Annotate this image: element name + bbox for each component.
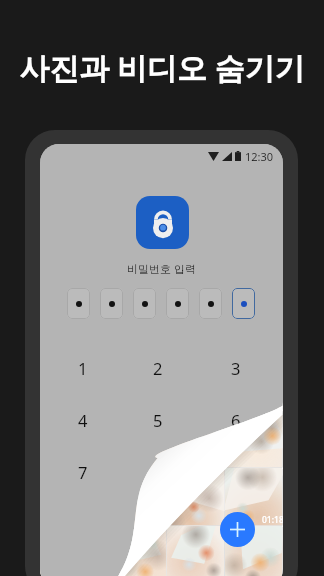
button[interactable]: 6: [197, 394, 275, 446]
button[interactable]: [133, 288, 156, 319]
staticText: 3: [231, 357, 241, 379]
button[interactable]: [166, 288, 189, 319]
staticText: 1: [78, 357, 88, 379]
button[interactable]: 3: [197, 342, 275, 394]
button[interactable]: [67, 288, 90, 319]
button[interactable]: 2: [119, 342, 197, 394]
button[interactable]: 4: [43, 394, 122, 446]
staticText: 8: [153, 461, 163, 483]
staticText: 사진과 비디오 숨기기: [0, 47, 324, 88]
staticText: 9: [231, 461, 241, 483]
button[interactable]: Locked: [136, 196, 189, 249]
staticText: 7: [78, 461, 88, 483]
button[interactable]: [232, 288, 255, 319]
button[interactable]: 1: [43, 342, 122, 394]
button[interactable]: 7: [43, 446, 122, 498]
button[interactable]: 5: [119, 394, 197, 446]
staticText: 2: [153, 357, 163, 379]
staticText: 6: [231, 409, 241, 431]
staticText: 12:30: [245, 149, 274, 164]
button[interactable]: Add: [220, 512, 255, 547]
staticText: 비밀번호 입력: [40, 261, 283, 276]
staticText: 4: [78, 409, 88, 431]
button[interactable]: 8: [119, 446, 197, 498]
staticText: 01:18: [262, 514, 283, 526]
button[interactable]: [100, 288, 123, 319]
button[interactable]: [199, 288, 222, 319]
staticText: 5: [153, 409, 163, 431]
button[interactable]: 9: [197, 446, 275, 498]
